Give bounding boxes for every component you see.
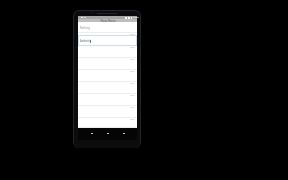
button[interactable]: Back [84, 128, 100, 136]
button[interactable] [78, 45, 137, 57]
staticText: 0/30 [130, 94, 135, 97]
button[interactable] [78, 93, 137, 105]
staticText: 0/30 [130, 33, 135, 36]
staticText: Android [80, 39, 90, 43]
staticText: 0/30 [130, 70, 135, 73]
button[interactable] [78, 105, 137, 117]
button[interactable]: New Note [78, 19, 137, 22]
button[interactable] [78, 21, 137, 32]
button[interactable] [78, 57, 137, 69]
staticText: 0/30 [130, 82, 135, 85]
button[interactable]: Home [100, 128, 116, 136]
button[interactable] [78, 35, 137, 46]
staticText: New Note [100, 19, 116, 22]
button[interactable] [78, 81, 137, 93]
button[interactable]: Recents [116, 128, 132, 136]
button[interactable] [78, 69, 137, 81]
staticText: 0/30 [130, 118, 135, 121]
staticText: Nothing [80, 26, 90, 30]
staticText: 0/30 [130, 58, 135, 61]
staticText: 0/30 [130, 106, 135, 109]
staticText: 0/30 [130, 46, 135, 49]
button[interactable] [78, 32, 137, 45]
button[interactable] [78, 117, 137, 127]
staticText: 12:30 [133, 16, 139, 19]
